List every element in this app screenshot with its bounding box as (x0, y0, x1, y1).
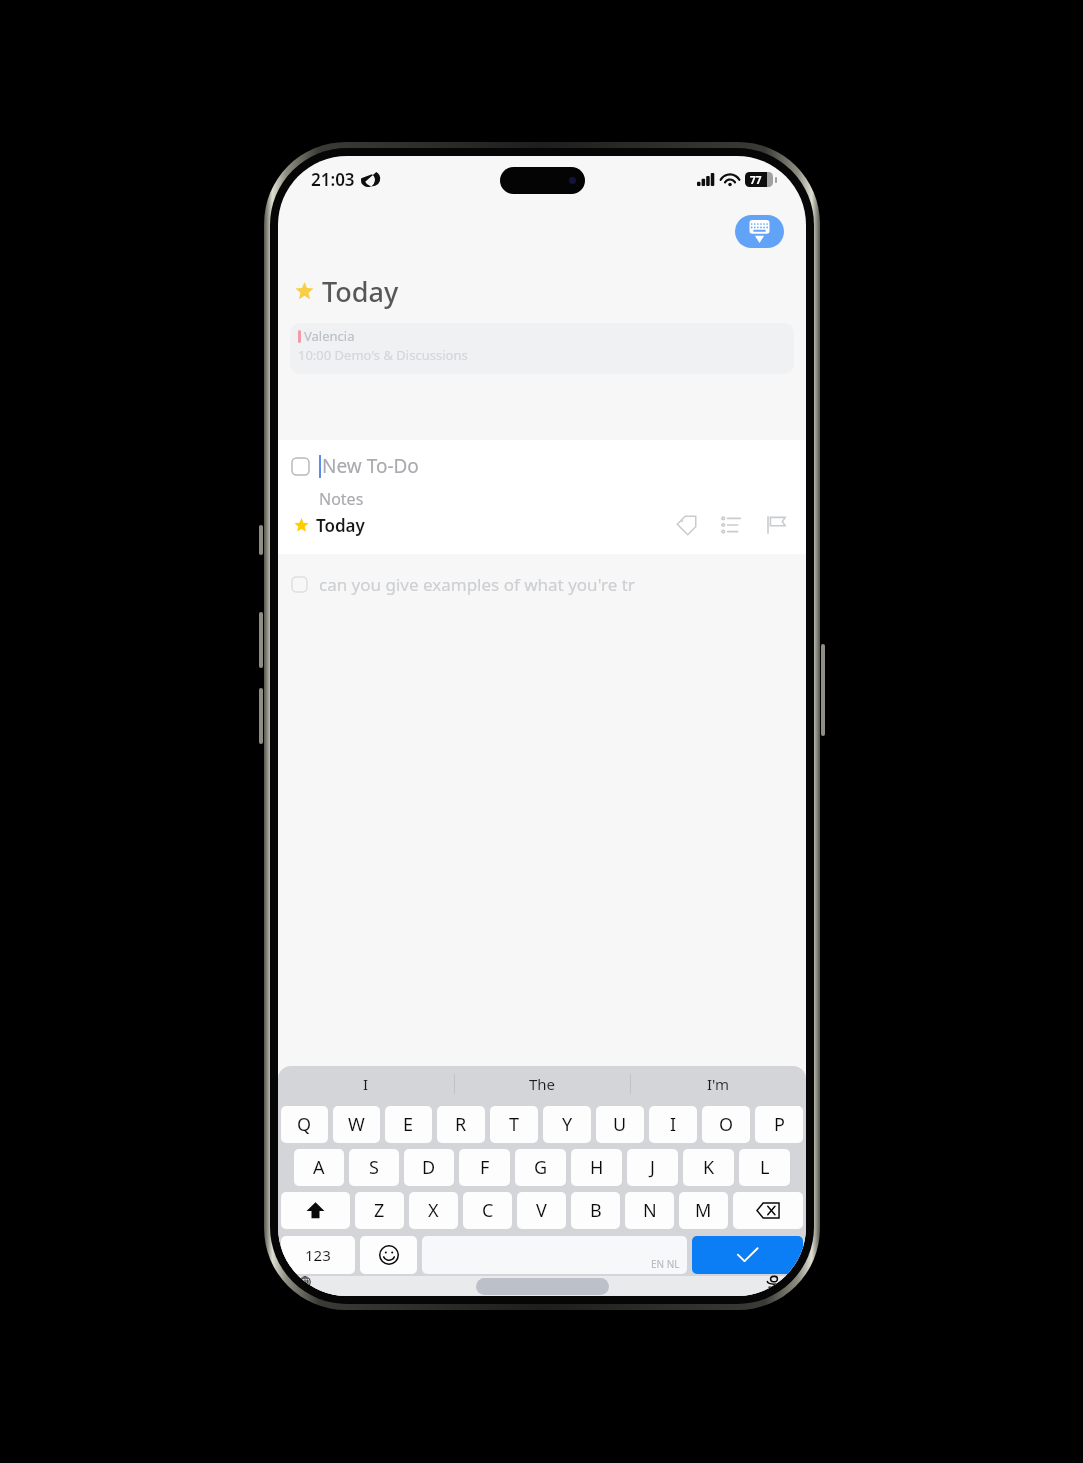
staticText: W (348, 1112, 365, 1137)
staticText: I'm (707, 1074, 730, 1094)
staticText: T (509, 1112, 520, 1137)
staticText: 77 (750, 173, 762, 187)
staticText: EN NL (651, 1257, 680, 1271)
staticText: X (428, 1198, 439, 1223)
button[interactable]: I'm (631, 1066, 806, 1101)
button[interactable]: T (490, 1106, 538, 1143)
staticText: V (536, 1198, 547, 1223)
button[interactable]: Language (295, 1276, 325, 1288)
staticText: Notes (319, 488, 364, 510)
staticText: can you give examples of what you're tr (319, 573, 635, 596)
button[interactable]: H (571, 1149, 622, 1186)
staticText: I (363, 1074, 369, 1094)
button[interactable]: Complete (292, 458, 309, 475)
staticText: N (643, 1198, 657, 1223)
button[interactable]: Backspace (733, 1192, 803, 1229)
button[interactable]: K (683, 1149, 734, 1186)
staticText: I (670, 1112, 677, 1137)
button[interactable]: W (333, 1106, 380, 1143)
button[interactable]: 123 (281, 1236, 355, 1274)
button[interactable]: I (278, 1066, 454, 1101)
staticText: New To-Do (322, 453, 419, 479)
button[interactable]: The (455, 1066, 630, 1101)
button[interactable]: EN NL (422, 1236, 687, 1274)
staticText: 10:00 Demo's & Discussions (298, 346, 468, 364)
staticText: U (613, 1112, 627, 1137)
staticText: Today (322, 273, 399, 310)
button[interactable]: I (649, 1106, 697, 1143)
staticText: Q (297, 1112, 312, 1137)
button[interactable]: B (571, 1192, 620, 1229)
button[interactable]: S (349, 1149, 399, 1186)
button[interactable]: Priority (759, 510, 793, 540)
staticText: C (482, 1198, 494, 1223)
button[interactable]: Subtasks (714, 510, 748, 540)
staticText: R (455, 1112, 467, 1137)
button[interactable]: M (679, 1192, 728, 1229)
staticText: H (590, 1155, 604, 1180)
staticText: G (534, 1155, 548, 1180)
button[interactable]: Z (355, 1192, 404, 1229)
button[interactable]: Dictation (759, 1276, 789, 1288)
button[interactable]: X (409, 1192, 458, 1229)
button[interactable]: D (404, 1149, 454, 1186)
button[interactable]: J (627, 1149, 678, 1186)
staticText: P (774, 1112, 785, 1137)
button[interactable]: Valencia (290, 323, 794, 374)
staticText: F (480, 1155, 490, 1180)
button[interactable]: O (702, 1106, 750, 1143)
button[interactable]: G (515, 1149, 566, 1186)
staticText: J (650, 1155, 655, 1180)
staticText: 123 (305, 1245, 331, 1265)
button[interactable]: Emoji (360, 1236, 417, 1274)
staticText: M (695, 1198, 712, 1223)
button[interactable]: U (596, 1106, 644, 1143)
staticText: K (703, 1155, 715, 1180)
button[interactable]: R (437, 1106, 485, 1143)
staticText: Y (562, 1112, 573, 1137)
button[interactable]: Today (294, 514, 365, 537)
staticText: Z (374, 1198, 385, 1223)
button[interactable]: Q (281, 1106, 328, 1143)
button[interactable]: V (517, 1192, 566, 1229)
button[interactable]: Shift (281, 1192, 350, 1229)
staticText: E (403, 1112, 414, 1137)
staticText: O (719, 1112, 734, 1137)
staticText: The (529, 1074, 556, 1094)
button[interactable]: P (755, 1106, 803, 1143)
button[interactable]: F (459, 1149, 510, 1186)
button[interactable]: E (385, 1106, 432, 1143)
button[interactable]: Y (543, 1106, 591, 1143)
button[interactable]: L (739, 1149, 790, 1186)
staticText: Valencia (304, 327, 355, 345)
staticText: S (369, 1155, 379, 1180)
button[interactable]: Hide keyboard (735, 215, 784, 248)
staticText: L (760, 1155, 770, 1180)
button[interactable]: N (625, 1192, 674, 1229)
staticText: A (313, 1155, 325, 1180)
button[interactable]: Done (692, 1236, 803, 1274)
button[interactable]: C (463, 1192, 512, 1229)
staticText: 21:03 (311, 168, 355, 191)
button[interactable]: Tag (669, 510, 703, 540)
staticText: D (422, 1155, 436, 1180)
staticText: B (590, 1198, 602, 1223)
button[interactable]: A (294, 1149, 344, 1186)
staticText: Today (316, 514, 365, 537)
